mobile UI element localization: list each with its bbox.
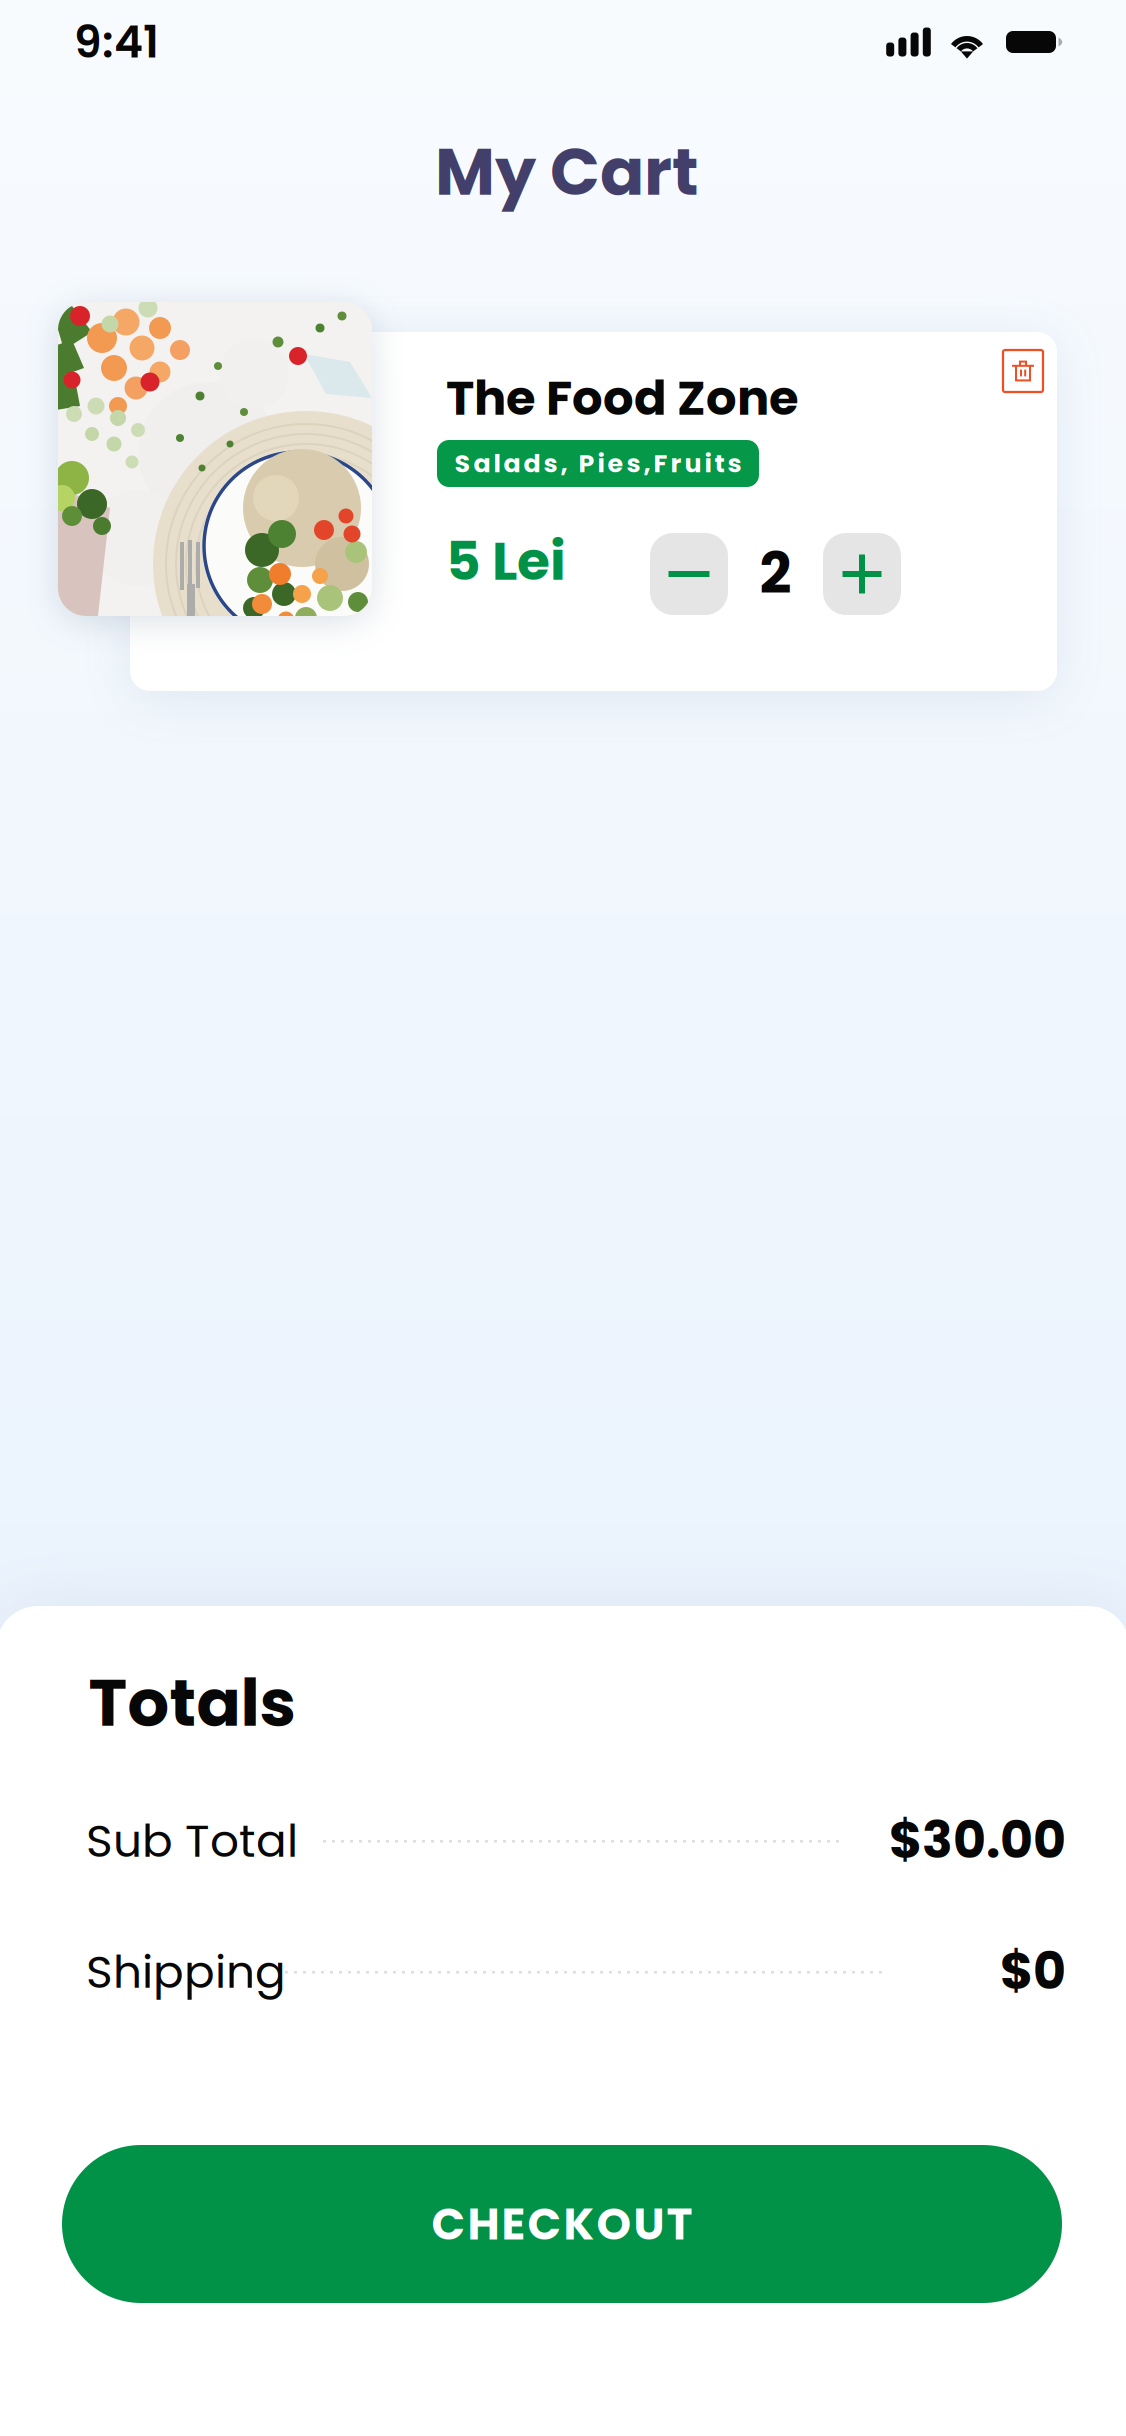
staticText: 5 Lei — [446, 524, 566, 598]
button[interactable]: Decrease quantity — [650, 533, 728, 615]
staticText: The Food Zone — [446, 364, 799, 432]
staticText: Sub Total — [86, 1809, 298, 1873]
staticText: 9:41 — [74, 11, 159, 73]
staticText: Salads, Pies,Fruits — [454, 446, 741, 481]
button[interactable]: Remove item from cart — [1003, 350, 1043, 392]
staticText: Totals — [88, 1657, 295, 1749]
staticText: Shipping — [86, 1940, 286, 2004]
button[interactable]: CHECKOUT — [62, 2145, 1062, 2303]
staticText: CHECKOUT — [431, 2193, 692, 2255]
button[interactable]: Increase quantity — [823, 533, 901, 615]
staticText: My Cart — [435, 126, 699, 218]
staticText: $30.00 — [889, 1804, 1066, 1875]
staticText: $0 — [1000, 1935, 1066, 2006]
staticText: 2 — [759, 535, 791, 613]
